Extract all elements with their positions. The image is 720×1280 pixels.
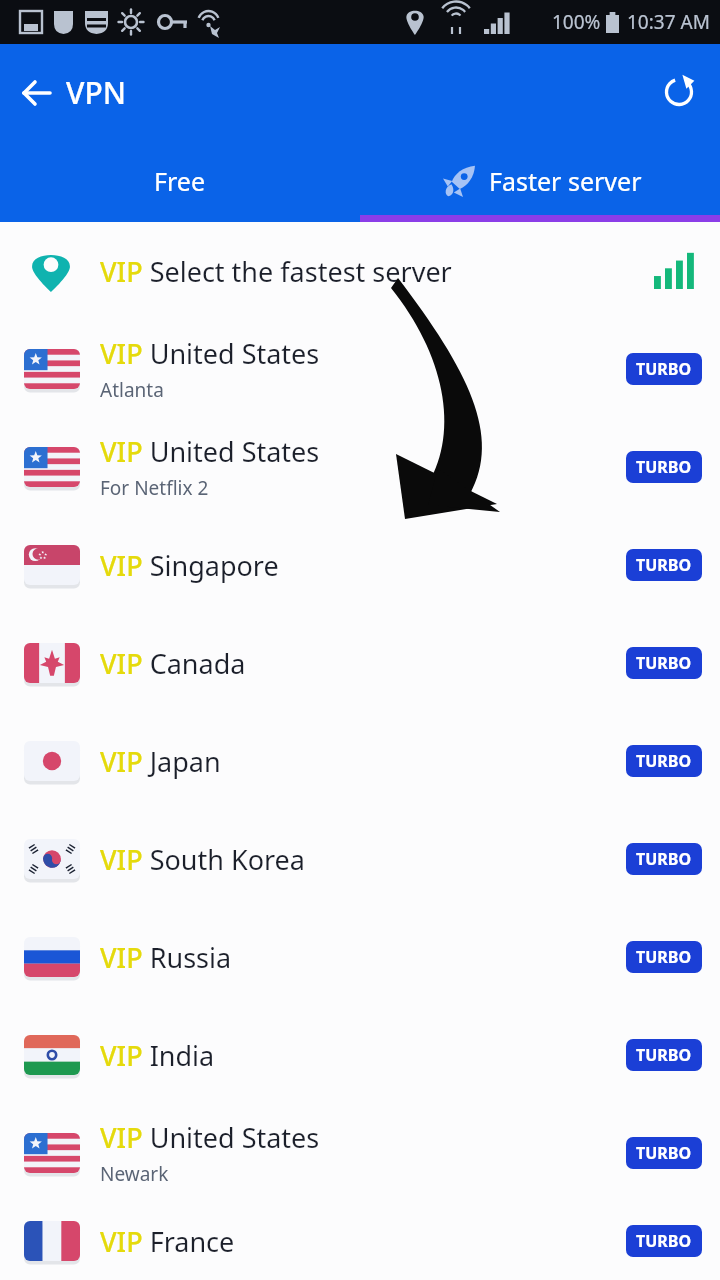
staticText: For Netflix 2 bbox=[100, 475, 209, 501]
staticText: 10:37 AM bbox=[627, 9, 710, 35]
staticText: Faster server bbox=[489, 164, 642, 198]
staticText: VIP United States bbox=[100, 335, 320, 372]
staticText: VIP South Korea bbox=[100, 841, 305, 878]
staticText: Newark bbox=[100, 1161, 169, 1187]
button[interactable]: VIP Singapore bbox=[0, 516, 720, 614]
staticText: TURBO bbox=[636, 750, 692, 772]
staticText: Free bbox=[154, 164, 206, 198]
staticText: TURBO bbox=[636, 1142, 692, 1164]
button[interactable]: TURBO bbox=[626, 843, 702, 875]
staticText: VIP Russia bbox=[100, 939, 232, 976]
staticText: TURBO bbox=[636, 358, 692, 380]
button[interactable]: VIP India bbox=[0, 1006, 720, 1104]
button[interactable]: VIP South Korea bbox=[0, 810, 720, 908]
button[interactable]: TURBO bbox=[626, 353, 702, 385]
button[interactable]: VIP Russia bbox=[0, 908, 720, 1006]
staticText: VIP India bbox=[100, 1037, 215, 1074]
button[interactable]: TURBO bbox=[626, 941, 702, 973]
staticText: TURBO bbox=[636, 848, 692, 870]
staticText: TURBO bbox=[636, 1044, 692, 1066]
button[interactable]: TURBO bbox=[626, 1137, 702, 1169]
button[interactable]: TURBO bbox=[626, 1225, 702, 1257]
staticText: VIP United States bbox=[100, 433, 320, 470]
staticText: TURBO bbox=[636, 946, 692, 968]
staticText: TURBO bbox=[636, 652, 692, 674]
staticText: VIP France bbox=[100, 1223, 235, 1260]
button[interactable]: VIP Select the fastest server bbox=[0, 222, 720, 320]
button[interactable]: Refresh bbox=[656, 69, 702, 115]
button[interactable]: Back bbox=[14, 66, 135, 119]
staticText: VIP Select the fastest server bbox=[100, 253, 452, 290]
button[interactable]: VIP United States bbox=[0, 320, 720, 418]
staticText: TURBO bbox=[636, 456, 692, 478]
button[interactable]: Free bbox=[0, 140, 360, 222]
staticText: VIP Japan bbox=[100, 743, 221, 780]
button[interactable]: VIP United States bbox=[0, 418, 720, 516]
staticText: TURBO bbox=[636, 1230, 692, 1252]
button[interactable]: VIP Canada bbox=[0, 614, 720, 712]
button[interactable]: TURBO bbox=[626, 1039, 702, 1071]
staticText: 100% bbox=[552, 9, 601, 35]
staticText: Atlanta bbox=[100, 377, 164, 403]
other: Back bbox=[22, 78, 52, 108]
staticText: VIP Singapore bbox=[100, 547, 279, 584]
button[interactable]: VIP United States bbox=[0, 1104, 720, 1202]
staticText: VIP Canada bbox=[100, 645, 246, 682]
button[interactable]: TURBO bbox=[626, 647, 702, 679]
button[interactable]: Faster server bbox=[360, 140, 720, 222]
button[interactable]: TURBO bbox=[626, 745, 702, 777]
staticText: TURBO bbox=[636, 554, 692, 576]
button[interactable]: VIP Japan bbox=[0, 712, 720, 810]
button[interactable]: TURBO bbox=[626, 549, 702, 581]
staticText: VPN bbox=[66, 72, 127, 113]
button[interactable]: VIP France bbox=[0, 1202, 720, 1280]
staticText: VIP United States bbox=[100, 1119, 320, 1156]
button[interactable]: TURBO bbox=[626, 451, 702, 483]
